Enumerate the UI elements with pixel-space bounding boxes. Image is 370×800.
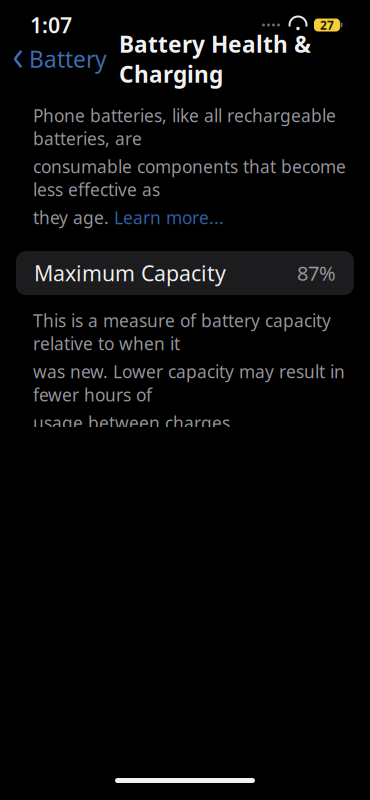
staticText: This is a measure of battery capacity re… [33, 309, 331, 355]
button[interactable]: Battery [0, 38, 107, 80]
staticText: Battery [29, 44, 107, 74]
staticText: was new. Lower capacity may result in fe… [33, 360, 345, 406]
staticText: 27 [320, 17, 334, 33]
staticText: Maximum Capacity [34, 259, 226, 287]
staticText: usage between charges. [33, 411, 235, 434]
staticText: Battery Health & Charging [119, 29, 311, 89]
staticText: past 80% until you need to use it. [33, 762, 305, 785]
staticText: 87% [297, 260, 336, 286]
staticText: consumable components that become less e… [33, 155, 346, 201]
staticText: Phone batteries, like all rechargeable b… [33, 104, 336, 150]
button[interactable]: Learn more... [114, 206, 224, 229]
button[interactable]: Maximum Capacity [16, 251, 354, 295]
staticText: they age. [33, 206, 114, 229]
staticText: Learn more... [114, 206, 224, 229]
staticText: 1:07 [30, 11, 72, 39]
